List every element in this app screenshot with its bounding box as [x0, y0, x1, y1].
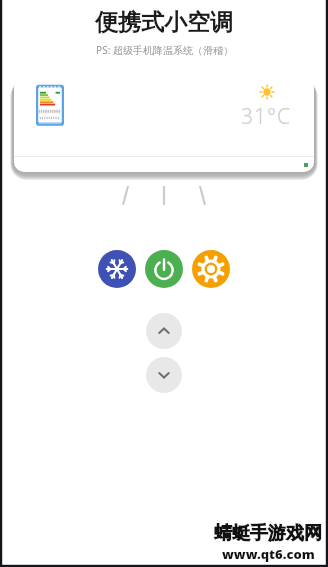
button[interactable]: Cool mode — [98, 250, 136, 288]
staticText: 蜻蜓手游戏网 — [214, 522, 322, 545]
staticText: www.qt6.com — [222, 545, 315, 563]
staticText: 31°C — [241, 102, 292, 131]
button[interactable]: Decrease — [146, 357, 182, 393]
staticText: 便携式小空调 — [95, 8, 233, 37]
button[interactable]: Power — [145, 250, 183, 288]
staticText: PS: 超级手机降温系统（滑稽） — [96, 43, 233, 57]
button[interactable]: Increase — [146, 313, 182, 349]
button[interactable]: 31°C — [14, 77, 314, 172]
button[interactable]: Brightness — [192, 250, 230, 288]
